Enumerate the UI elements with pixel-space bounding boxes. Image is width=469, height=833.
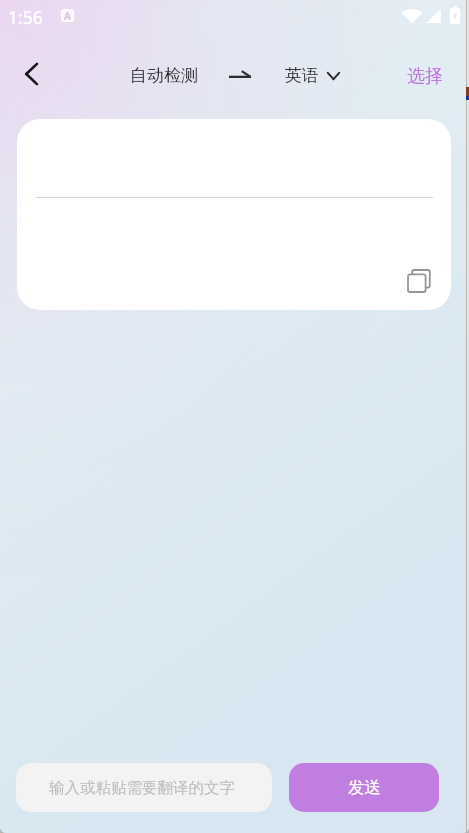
other: Swap languages	[229, 70, 251, 78]
staticText: 选择	[407, 65, 443, 88]
button[interactable]: 发送	[289, 763, 439, 812]
staticText: 输入或粘贴需要翻译的文字	[49, 778, 235, 798]
button[interactable]: 英语	[279, 57, 346, 94]
button[interactable]: Back	[8, 51, 54, 97]
button[interactable]: 输入或粘贴需要翻译的文字	[16, 763, 272, 812]
staticText: 1:56	[8, 5, 43, 29]
staticText: 英语	[285, 65, 319, 86]
button[interactable]: 自动检测	[124, 57, 204, 94]
staticText: 自动检测	[130, 65, 198, 86]
staticText: 发送	[348, 777, 381, 798]
staticText: A	[64, 9, 71, 22]
button[interactable]: Copy	[402, 264, 436, 298]
button[interactable]: 选择	[399, 57, 451, 96]
